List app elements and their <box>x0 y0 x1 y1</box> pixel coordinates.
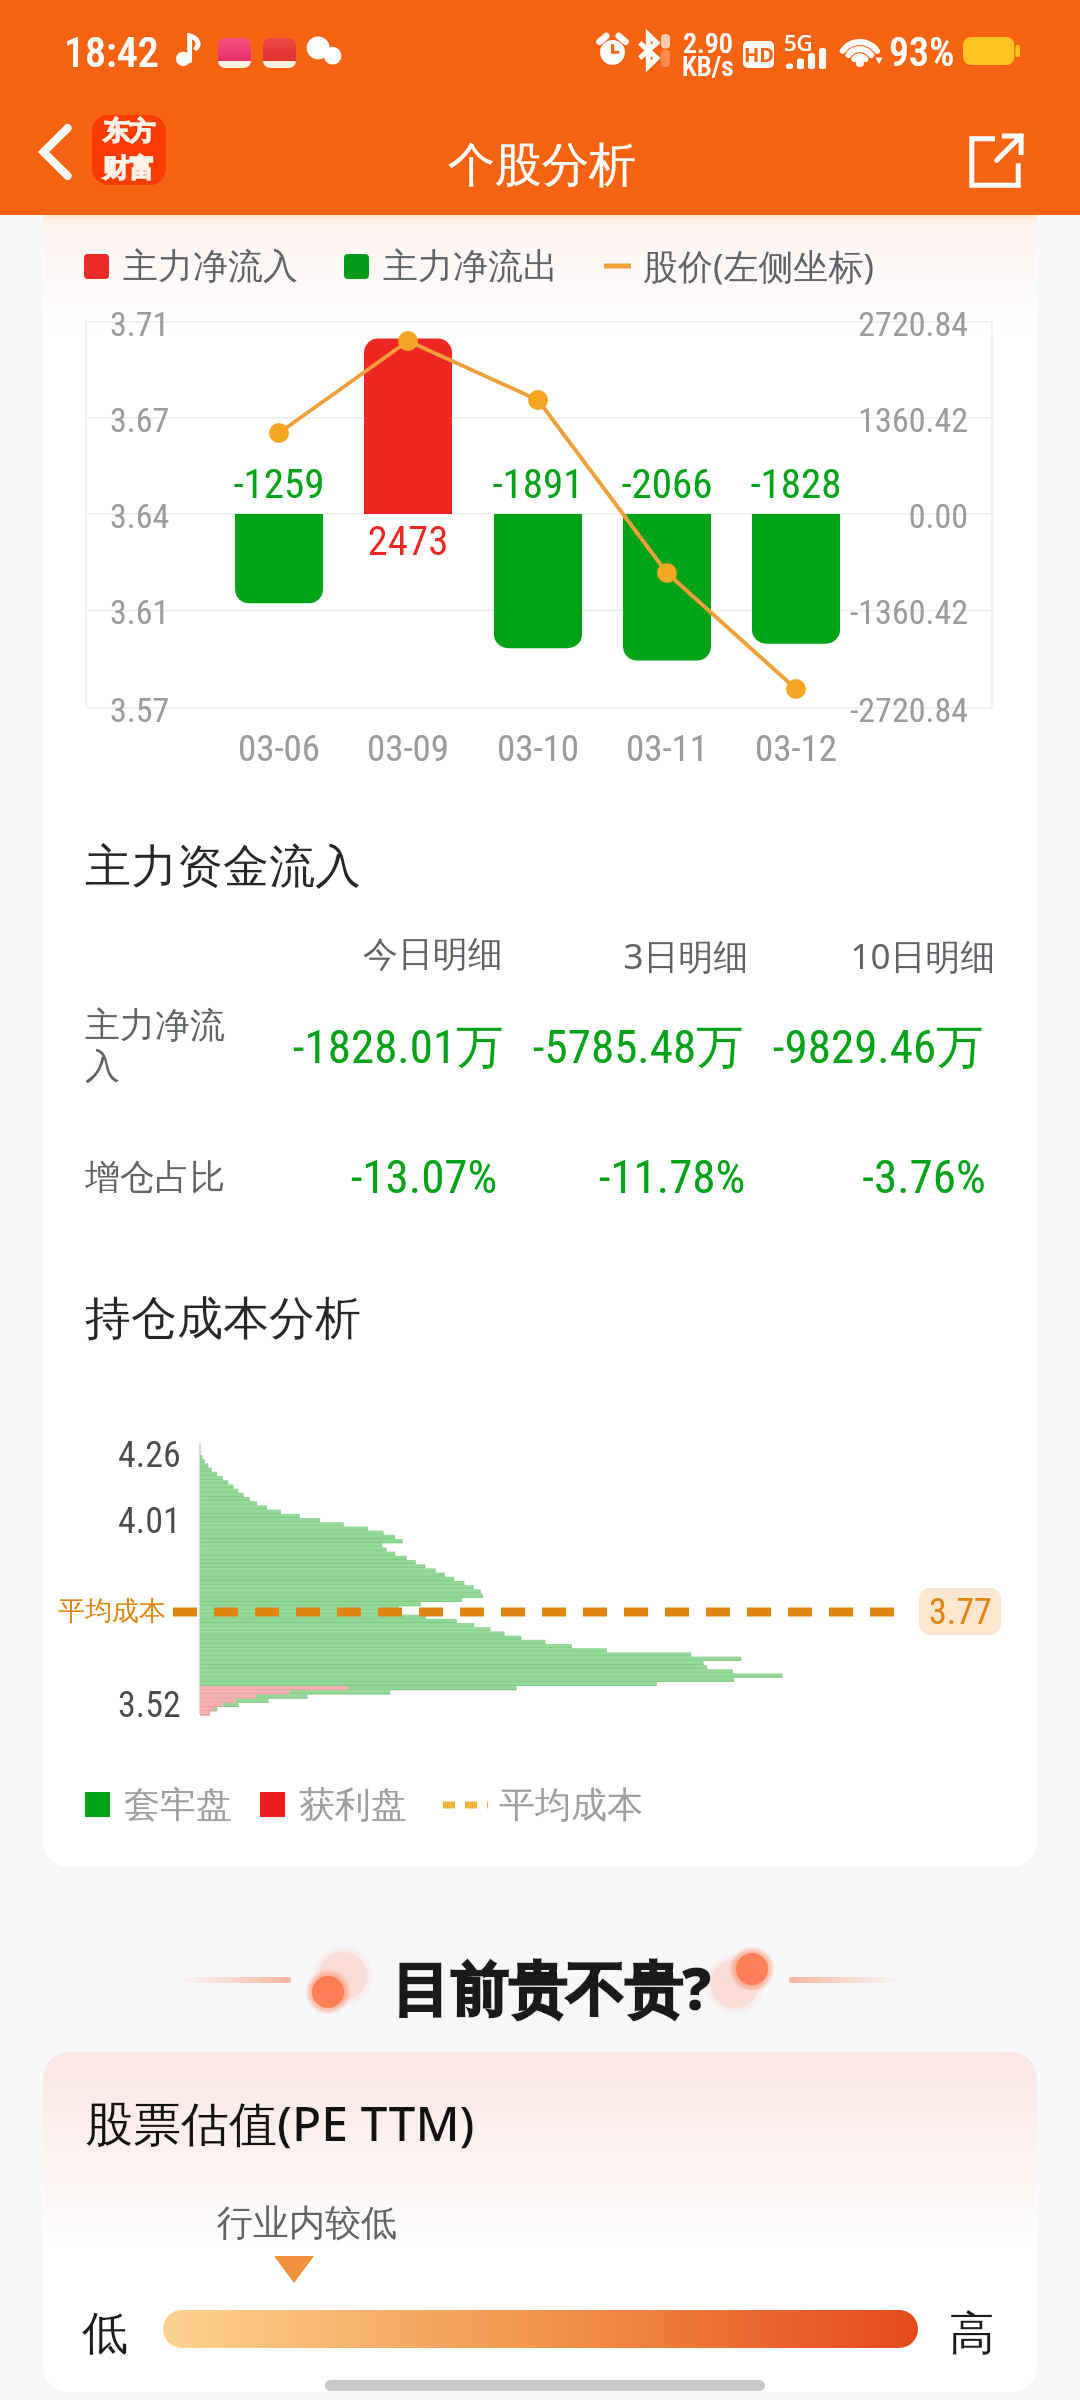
staticText: -9829.46万 <box>762 1018 994 1077</box>
staticText: 2473 <box>318 517 498 565</box>
staticText: HD <box>744 41 774 68</box>
staticText: -13.07% <box>308 1149 540 1204</box>
staticText: -5785.48万 <box>522 1018 754 1077</box>
staticText: -3.76% <box>808 1149 1040 1204</box>
staticText: 4.26 <box>118 1434 181 1476</box>
staticText: 股票估值(PE TTM) <box>85 2090 475 2156</box>
staticText: 获利盘 <box>299 1782 407 1827</box>
staticText: -1360.42 <box>768 592 968 632</box>
staticText: 行业内较低 <box>217 2200 397 2245</box>
staticText: 股价(左侧坐标) <box>643 242 875 290</box>
staticText: 主力净流入 <box>85 1003 235 1089</box>
staticText: 低 <box>82 2305 128 2363</box>
staticText: 18:42 <box>64 28 159 77</box>
staticText: 东方 <box>103 115 155 148</box>
staticText: 03-12 <box>706 727 886 770</box>
staticText: -11.78% <box>556 1149 788 1204</box>
staticText: 目前贵不贵? <box>392 1948 712 2027</box>
staticText: 主力资金流入 <box>85 838 361 896</box>
staticText: 增仓占比 <box>85 1155 225 1199</box>
staticText: -1891 <box>448 460 628 508</box>
staticText: 3.67 <box>110 400 170 440</box>
staticText: 持仓成本分析 <box>85 1290 361 1348</box>
staticText: KB/s <box>682 51 734 83</box>
staticText: 3.61 <box>110 592 170 632</box>
staticText: 03-10 <box>448 727 628 770</box>
staticText: 1360.42 <box>768 400 968 440</box>
staticText: 3.71 <box>110 304 170 344</box>
button[interactable]: East Money home <box>92 115 166 185</box>
staticText: 10日明细 <box>833 932 1013 980</box>
staticText: 4.01 <box>118 1500 181 1542</box>
staticText: 3.64 <box>110 496 170 536</box>
staticText: 高 <box>949 2305 995 2363</box>
staticText: 3日明细 <box>596 932 776 980</box>
staticText: 今日明细 <box>343 932 523 976</box>
staticText: 主力净流入 <box>123 244 298 288</box>
staticText: 平均成本 <box>58 1594 166 1628</box>
staticText: 套牢盘 <box>124 1782 232 1827</box>
staticText: -2066 <box>577 460 757 508</box>
staticText: 平均成本 <box>499 1782 643 1827</box>
button[interactable]: 持仓成本分析 <box>43 1250 1037 1867</box>
staticText: -2720.84 <box>768 690 968 730</box>
staticText: -1259 <box>189 460 369 508</box>
staticText: 2.90 <box>683 27 733 60</box>
staticText: 03-09 <box>318 727 498 770</box>
staticText: 主力净流出 <box>383 244 558 288</box>
button[interactable]: 主力净流入走势图 <box>43 215 1037 795</box>
button[interactable]: 主力资金流入 <box>43 800 1037 1240</box>
staticText: 0.00 <box>768 496 968 536</box>
staticText: 3.77 <box>929 1591 992 1633</box>
staticText: 个股分析 <box>448 136 636 195</box>
button[interactable]: Share <box>955 122 1035 202</box>
staticText: 93% <box>889 29 955 76</box>
staticText: -1828 <box>706 460 886 508</box>
button[interactable]: Back <box>19 116 91 188</box>
staticText: 3.57 <box>110 690 170 730</box>
staticText: 财富 <box>103 152 155 185</box>
staticText: 2720.84 <box>768 304 968 344</box>
staticText: 5G <box>784 27 813 57</box>
staticText: -1828.01万 <box>282 1018 514 1077</box>
button[interactable]: 股票估值(PE TTM) <box>43 2052 1037 2392</box>
staticText: 03-11 <box>577 727 757 770</box>
staticText: 3.52 <box>118 1684 181 1726</box>
staticText: 03-06 <box>189 727 369 770</box>
